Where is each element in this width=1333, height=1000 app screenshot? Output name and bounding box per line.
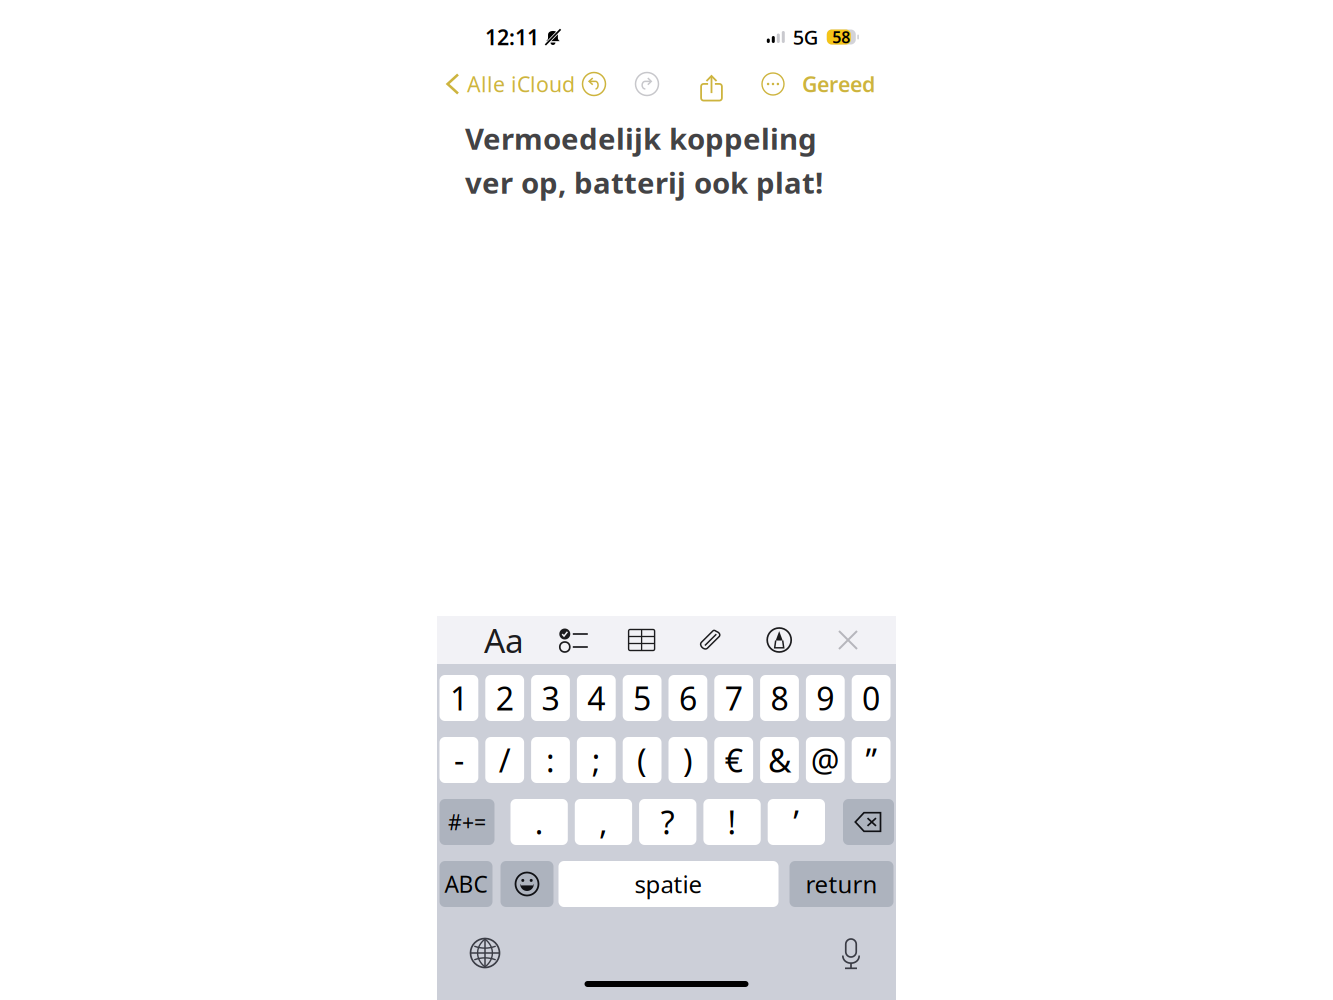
staticText: Gereed bbox=[802, 70, 875, 98]
button[interactable]: ! bbox=[703, 799, 761, 845]
staticText: Vermoedelijk koppeling bbox=[465, 119, 817, 158]
staticText: 2 bbox=[496, 677, 514, 719]
button[interactable]: Redo bbox=[638, 63, 668, 105]
button[interactable]: Table bbox=[619, 616, 665, 664]
staticText: 7 bbox=[725, 677, 743, 719]
button[interactable]: return bbox=[789, 861, 893, 907]
button[interactable]: Share bbox=[692, 63, 722, 105]
staticText: ver op, batterij ook plat! bbox=[465, 163, 823, 202]
staticText: Alle iCloud bbox=[467, 70, 575, 98]
staticText: ; bbox=[592, 739, 601, 781]
staticText: ’ bbox=[793, 801, 799, 843]
button[interactable]: More bbox=[747, 63, 777, 105]
button[interactable]: : bbox=[531, 737, 570, 783]
button[interactable]: ( bbox=[623, 737, 661, 783]
button[interactable]: Alle iCloud bbox=[447, 63, 575, 105]
button[interactable]: 7 bbox=[714, 675, 753, 721]
button[interactable]: 5 bbox=[623, 675, 661, 721]
button[interactable]: #+= bbox=[439, 799, 494, 845]
staticText: ) bbox=[683, 739, 693, 781]
staticText: & bbox=[768, 739, 791, 781]
staticText: @ bbox=[811, 739, 840, 781]
staticText: 6 bbox=[679, 677, 697, 719]
button[interactable]: 0 bbox=[852, 675, 890, 721]
button[interactable]: Next keyboard bbox=[463, 933, 507, 973]
button[interactable]: 4 bbox=[577, 675, 616, 721]
button[interactable]: Undo bbox=[585, 63, 615, 105]
button[interactable]: Attach bbox=[687, 616, 733, 664]
staticText: ABC bbox=[444, 869, 487, 899]
button[interactable]: Dictation bbox=[832, 933, 876, 973]
button[interactable]: € bbox=[714, 737, 753, 783]
button[interactable]: / bbox=[485, 737, 524, 783]
button[interactable]: Delete bbox=[843, 799, 894, 845]
button[interactable]: 9 bbox=[806, 675, 845, 721]
staticText: ? bbox=[661, 801, 675, 843]
staticText: 1 bbox=[450, 677, 468, 719]
button[interactable]: 2 bbox=[485, 675, 524, 721]
button[interactable]: Checklist bbox=[550, 616, 596, 664]
button[interactable]: - bbox=[439, 737, 478, 783]
staticText: 5 bbox=[633, 677, 651, 719]
button[interactable]: & bbox=[760, 737, 799, 783]
button[interactable]: ) bbox=[668, 737, 707, 783]
button[interactable]: Markup bbox=[756, 616, 802, 664]
staticText: 0 bbox=[862, 677, 880, 719]
button[interactable]: @ bbox=[806, 737, 845, 783]
button[interactable]: 3 bbox=[531, 675, 570, 721]
button[interactable]: Gereed bbox=[802, 63, 875, 105]
staticText: return bbox=[805, 868, 877, 900]
staticText: ! bbox=[727, 801, 736, 843]
staticText: #+= bbox=[448, 808, 486, 836]
staticText: 4 bbox=[587, 677, 605, 719]
button[interactable]: 6 bbox=[668, 675, 707, 721]
button[interactable]: ? bbox=[639, 799, 696, 845]
staticText: 9 bbox=[816, 677, 834, 719]
staticText: spatie bbox=[634, 868, 702, 900]
staticText: : bbox=[546, 739, 555, 781]
button[interactable]: Aa bbox=[481, 616, 527, 664]
button[interactable]: Close keyboard bbox=[825, 616, 871, 664]
staticText: 5G bbox=[793, 24, 819, 50]
staticText: Aa bbox=[484, 618, 524, 662]
button[interactable]: Emoji bbox=[500, 861, 553, 907]
staticText: ( bbox=[637, 739, 647, 781]
staticText: € bbox=[725, 739, 743, 781]
staticText: , bbox=[599, 801, 608, 843]
staticText: 3 bbox=[541, 677, 559, 719]
staticText: 58 bbox=[832, 26, 850, 48]
staticText: 8 bbox=[770, 677, 788, 719]
button[interactable]: ” bbox=[852, 737, 890, 783]
button[interactable]: , bbox=[575, 799, 632, 845]
staticText: - bbox=[454, 739, 464, 781]
button[interactable]: spatie bbox=[558, 861, 778, 907]
button[interactable]: . bbox=[510, 799, 568, 845]
button[interactable]: ; bbox=[577, 737, 616, 783]
button[interactable]: ABC bbox=[439, 861, 492, 907]
staticText: . bbox=[535, 801, 544, 843]
button[interactable]: 1 bbox=[439, 675, 478, 721]
button[interactable]: ’ bbox=[768, 799, 825, 845]
staticText: / bbox=[499, 739, 511, 781]
staticText: 12:11 bbox=[485, 23, 539, 51]
button[interactable]: 8 bbox=[760, 675, 799, 721]
staticText: ” bbox=[866, 739, 877, 781]
